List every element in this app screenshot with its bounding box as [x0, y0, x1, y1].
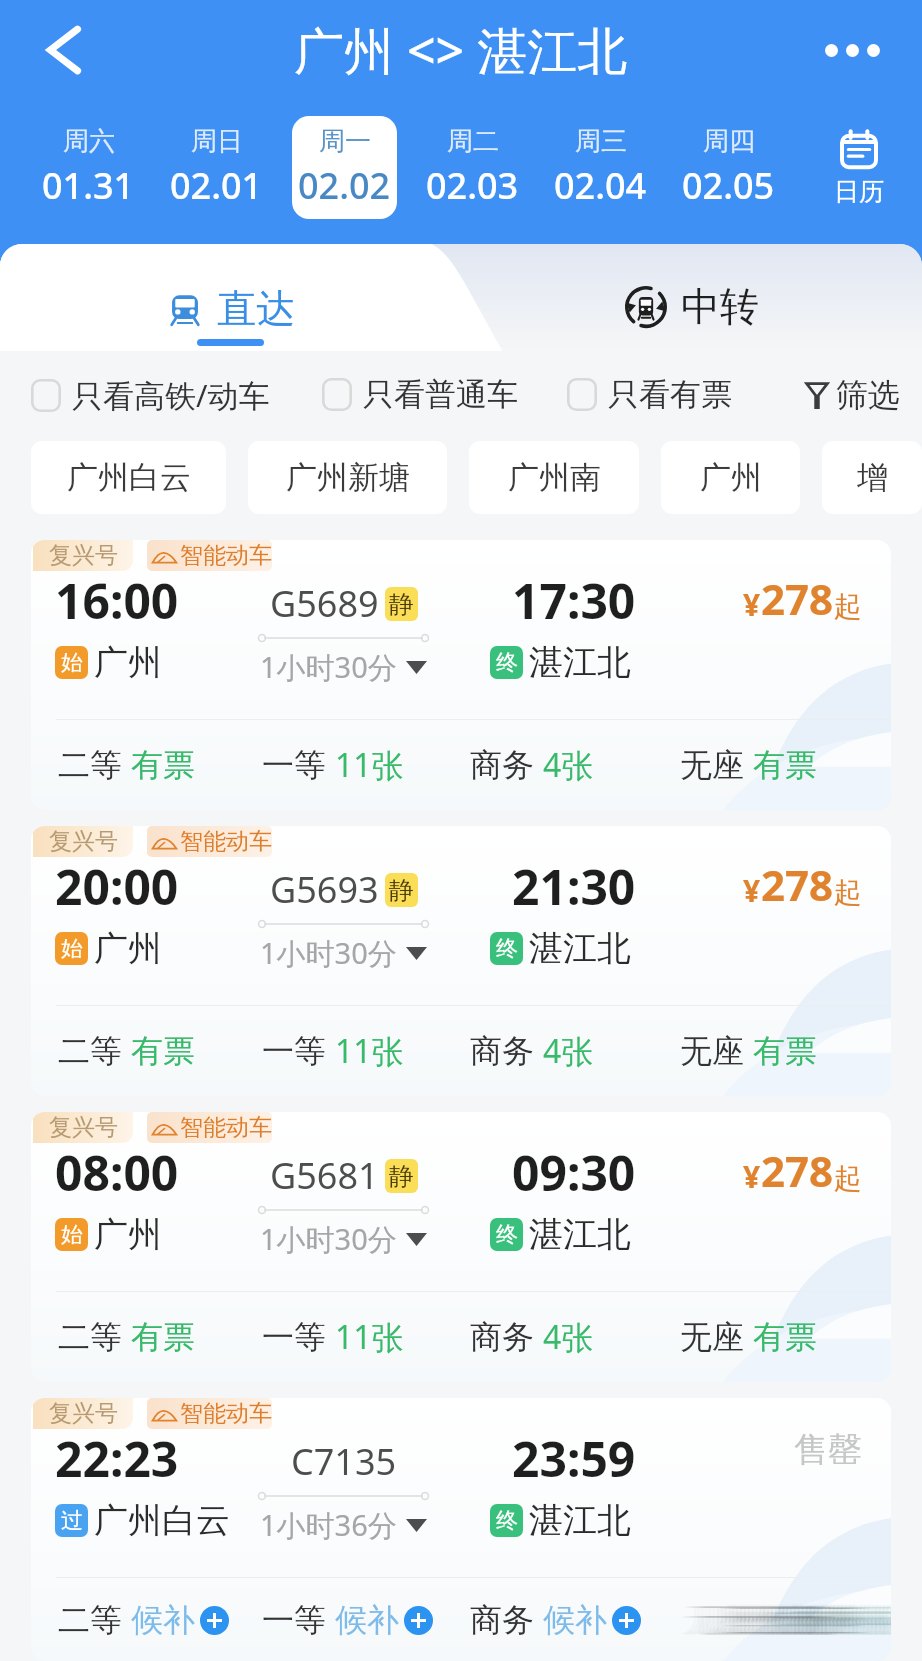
staticText: 静: [389, 1161, 414, 1192]
staticText: 1小时30分: [260, 647, 397, 687]
staticText: 无座: [683, 1600, 747, 1640]
staticText: 无座: [729, 1600, 793, 1640]
button[interactable]: 中转: [461, 244, 922, 351]
staticText: 候补: [771, 1600, 835, 1640]
staticText: 候补: [835, 1600, 891, 1640]
staticText: 无座: [753, 1600, 817, 1640]
staticText: 无座: [694, 1600, 758, 1640]
button[interactable]: 周三: [548, 116, 653, 219]
staticText: 广州: [94, 641, 162, 684]
staticText: 候补: [827, 1600, 891, 1640]
staticText: 无座: [776, 1600, 840, 1640]
staticText: 候补: [857, 1600, 891, 1640]
button[interactable]: 广州: [661, 441, 800, 514]
button[interactable]: 周四: [676, 116, 781, 219]
staticText: 静: [389, 875, 414, 906]
staticText: 无座: [775, 1600, 839, 1640]
staticText: 08:00: [55, 1140, 179, 1205]
button[interactable]: 只看有票: [567, 375, 732, 414]
staticText: 湛江北: [529, 641, 631, 684]
button[interactable]: Calendar: [792, 100, 922, 244]
staticText: 候补: [826, 1600, 890, 1640]
staticText: 候补: [791, 1600, 855, 1640]
staticText: 广州: [94, 1213, 162, 1256]
staticText: 候补: [834, 1600, 891, 1640]
staticText: 候补: [868, 1600, 891, 1640]
staticText: 周三: [575, 125, 627, 158]
button[interactable]: 复兴号: [31, 540, 891, 810]
staticText: 无座: [791, 1600, 855, 1640]
staticText: 终: [496, 935, 518, 963]
staticText: 始: [61, 649, 83, 677]
staticText: 无座: [730, 1600, 794, 1640]
button[interactable]: 直达: [0, 244, 461, 351]
staticText: 无座: [765, 1600, 829, 1640]
button[interactable]: 周六: [36, 116, 141, 219]
staticText: 候补: [861, 1600, 891, 1640]
staticText: 4张: [543, 743, 594, 787]
staticText: 候补: [761, 1600, 825, 1640]
button[interactable]: 广州南: [469, 441, 639, 514]
staticText: 周日: [191, 125, 243, 158]
staticText: 候补: [789, 1600, 853, 1640]
staticText: 候补: [853, 1600, 891, 1640]
staticText: 始: [61, 935, 83, 963]
button[interactable]: 复兴号: [31, 1112, 891, 1382]
staticText: 智能动车: [180, 1113, 272, 1142]
staticText: 候补: [831, 1600, 891, 1640]
staticText: 候补: [869, 1600, 891, 1640]
staticText: ¥: [743, 870, 761, 911]
staticText: 无座: [754, 1600, 818, 1640]
staticText: 无座: [746, 1600, 810, 1640]
button[interactable]: 复兴号: [31, 1398, 891, 1661]
staticText: 无座: [741, 1600, 805, 1640]
staticText: 无座: [748, 1600, 812, 1640]
staticText: 候补: [804, 1600, 868, 1640]
staticText: 候补: [829, 1600, 891, 1640]
button[interactable]: 广州新塘: [248, 441, 447, 514]
staticText: 候补: [822, 1600, 886, 1640]
button[interactable]: More options: [812, 10, 892, 90]
staticText: 候补: [838, 1600, 891, 1640]
staticText: 无座: [704, 1600, 768, 1640]
staticText: 无座: [799, 1600, 863, 1640]
staticText: 无座: [756, 1600, 820, 1640]
button[interactable]: 周一: [292, 116, 397, 219]
staticText: 无座: [758, 1600, 822, 1640]
button[interactable]: 广州白云: [31, 441, 226, 514]
staticText: 候补: [825, 1600, 889, 1640]
button[interactable]: 复兴号: [31, 826, 891, 1096]
staticText: 候补: [843, 1600, 891, 1640]
staticText: 1小时30分: [260, 1219, 397, 1259]
button[interactable]: 增: [822, 441, 922, 514]
staticText: 候补: [837, 1600, 891, 1640]
staticText: 无座: [680, 1031, 744, 1071]
button[interactable]: 周二: [420, 116, 525, 219]
staticText: 无座: [710, 1600, 774, 1640]
button[interactable]: 只看高铁/动车: [31, 374, 270, 416]
staticText: 无座: [707, 1600, 771, 1640]
staticText: 无座: [749, 1600, 813, 1640]
staticText: 无座: [770, 1600, 834, 1640]
staticText: 候补: [800, 1600, 864, 1640]
staticText: ¥: [743, 1156, 761, 1197]
staticText: 02.02: [298, 161, 391, 210]
button[interactable]: 周日: [164, 116, 269, 219]
staticText: 无座: [752, 1600, 816, 1640]
staticText: 无座: [807, 1600, 871, 1640]
staticText: 无座: [684, 1600, 748, 1640]
button[interactable]: Back: [29, 15, 99, 85]
staticText: 复兴号: [49, 1399, 118, 1428]
staticText: 1小时30分: [260, 933, 397, 973]
button[interactable]: 筛选: [806, 375, 900, 415]
staticText: 无座: [785, 1600, 849, 1640]
staticText: 16:00: [55, 568, 179, 633]
staticText: 起: [834, 589, 862, 624]
button[interactable]: 只看普通车: [322, 375, 518, 414]
staticText: 候补: [780, 1600, 844, 1640]
staticText: 无座: [711, 1600, 775, 1640]
staticText: 候补: [816, 1600, 880, 1640]
staticText: 候补: [764, 1600, 828, 1640]
staticText: 无座: [727, 1600, 791, 1640]
staticText: 候补: [776, 1600, 840, 1640]
